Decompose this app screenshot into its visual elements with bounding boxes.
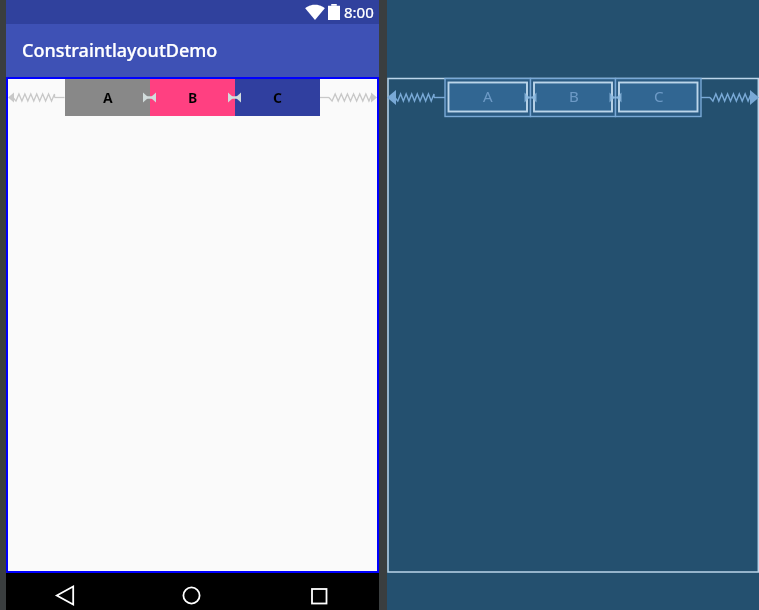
button[interactable]: Back: [39, 573, 91, 610]
button[interactable]: A: [65, 79, 150, 116]
staticText: C: [273, 88, 282, 107]
button[interactable]: B: [150, 79, 235, 116]
staticText: A: [103, 88, 113, 107]
staticText: B: [188, 88, 198, 107]
button[interactable]: A: [387, 0, 759, 610]
button[interactable]: Recent apps: [293, 573, 345, 610]
staticText: A: [483, 86, 493, 106]
staticText: 8:00: [344, 2, 374, 22]
staticText: ConstraintlayoutDemo: [22, 38, 218, 63]
button[interactable]: C: [235, 79, 320, 116]
staticText: B: [569, 86, 579, 106]
button[interactable]: Home: [165, 573, 217, 610]
staticText: C: [654, 86, 664, 106]
